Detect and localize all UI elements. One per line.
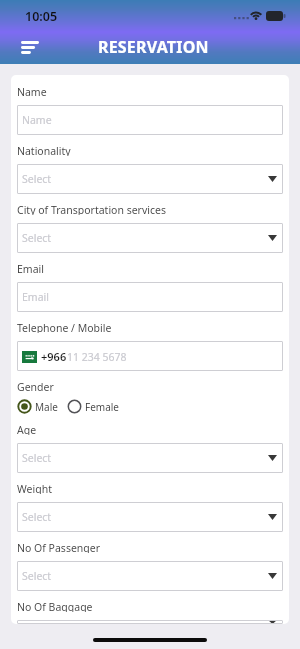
button[interactable]: Select [17, 164, 283, 194]
button[interactable]: Select [17, 620, 283, 624]
staticText: Select [22, 569, 52, 583]
staticText: Select [22, 620, 52, 624]
staticText: Select [22, 172, 52, 186]
staticText: 11 234 5678 [67, 350, 127, 364]
staticText: RESERVATION [98, 36, 209, 58]
button[interactable]: Email [17, 282, 283, 312]
staticText: Female [85, 400, 120, 414]
button[interactable]: Name [17, 105, 283, 135]
staticText: Select [22, 510, 52, 524]
staticText: No Of Passenger [17, 541, 101, 553]
button[interactable]: Select [17, 443, 283, 473]
staticText: Name [22, 113, 52, 127]
button[interactable]: Male [17, 399, 58, 414]
button[interactable]: Select [17, 561, 283, 591]
staticText: No Of Baggage [17, 600, 93, 612]
staticText: +966 [41, 349, 67, 364]
staticText: Nationality [17, 144, 71, 156]
staticText: Name [17, 85, 47, 97]
staticText: Weight [17, 482, 52, 494]
staticText: Male [35, 400, 58, 414]
staticText: City of Transportation services [17, 203, 166, 215]
button[interactable]: Select [17, 502, 283, 532]
button[interactable]: Female [67, 399, 120, 414]
staticText: Email [22, 290, 49, 304]
staticText: Telephone / Mobile [17, 321, 112, 333]
staticText: Select [22, 231, 52, 245]
button[interactable]: Open navigation menu [13, 32, 47, 62]
button[interactable]: +966 [17, 341, 283, 371]
staticText: Gender [17, 380, 54, 392]
staticText: 10:05 [25, 8, 58, 25]
staticText: Email [17, 262, 44, 274]
staticText: Select [22, 451, 52, 465]
staticText: Age [17, 423, 37, 435]
button[interactable]: Select [17, 223, 283, 253]
